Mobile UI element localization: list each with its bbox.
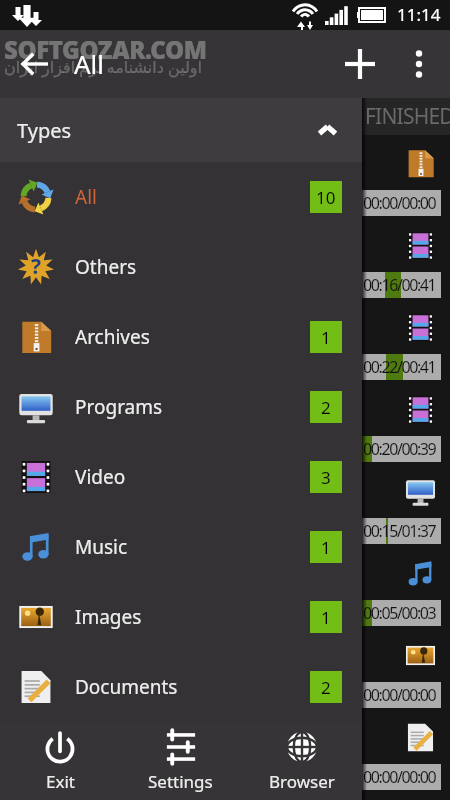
staticText: Music bbox=[75, 534, 128, 560]
staticText: Browser bbox=[269, 770, 335, 793]
button[interactable]: More options bbox=[395, 40, 443, 88]
staticText: 1 bbox=[321, 326, 331, 349]
button[interactable]: Archives bbox=[0, 302, 362, 372]
staticText: 1 bbox=[321, 536, 331, 559]
button[interactable]: Add bbox=[336, 40, 384, 88]
button[interactable]: Exit bbox=[0, 723, 120, 800]
staticText: 3 bbox=[321, 466, 331, 489]
staticText: Others bbox=[75, 254, 137, 280]
staticText: 00:20/00:39 bbox=[363, 438, 436, 460]
staticText: Exit bbox=[46, 770, 75, 793]
staticText: Documents bbox=[75, 674, 178, 700]
staticText: اولین دانشنامه نرم افزار ایران bbox=[4, 56, 203, 78]
staticText: 00:15/01:37 bbox=[363, 520, 436, 542]
button[interactable]: Settings bbox=[120, 723, 241, 800]
button[interactable]: Music bbox=[0, 512, 362, 582]
staticText: 11:14 bbox=[397, 3, 441, 26]
staticText: 10 bbox=[316, 186, 336, 209]
staticText: Archives bbox=[75, 324, 150, 350]
staticText: Images bbox=[75, 604, 142, 630]
button[interactable]: Images bbox=[0, 582, 362, 652]
staticText: 2 bbox=[321, 396, 331, 419]
staticText: 1 bbox=[321, 606, 331, 629]
staticText: Settings bbox=[148, 770, 213, 793]
button[interactable]: Programs bbox=[0, 372, 362, 442]
button[interactable]: Documents bbox=[0, 652, 362, 722]
button[interactable]: Types bbox=[0, 98, 362, 162]
staticText: SOFTGOZAR.COM bbox=[4, 33, 207, 66]
staticText: 00:00/00:00 bbox=[363, 192, 436, 214]
staticText: Programs bbox=[75, 394, 163, 420]
staticText: 2 bbox=[321, 676, 331, 699]
staticText: FINISHED bbox=[365, 102, 450, 131]
button[interactable]: Browser bbox=[241, 723, 362, 800]
staticText: 00:00/00:00 bbox=[363, 684, 436, 706]
staticText: 00:22/00:41 bbox=[363, 356, 436, 378]
staticText: All bbox=[74, 46, 105, 81]
button[interactable]: Back bbox=[11, 40, 59, 88]
staticText: ? bbox=[31, 252, 42, 281]
button[interactable]: All bbox=[0, 162, 362, 232]
button[interactable]: Video bbox=[0, 442, 362, 512]
staticText: 00:00/00:00 bbox=[363, 766, 436, 788]
staticText: 00:16/00:41 bbox=[363, 274, 436, 296]
staticText: 00:05/00:03 bbox=[363, 602, 436, 624]
staticText: All bbox=[75, 184, 97, 210]
staticText: Video bbox=[75, 464, 126, 490]
staticText: Types bbox=[17, 117, 72, 144]
button[interactable]: ? bbox=[0, 232, 362, 302]
